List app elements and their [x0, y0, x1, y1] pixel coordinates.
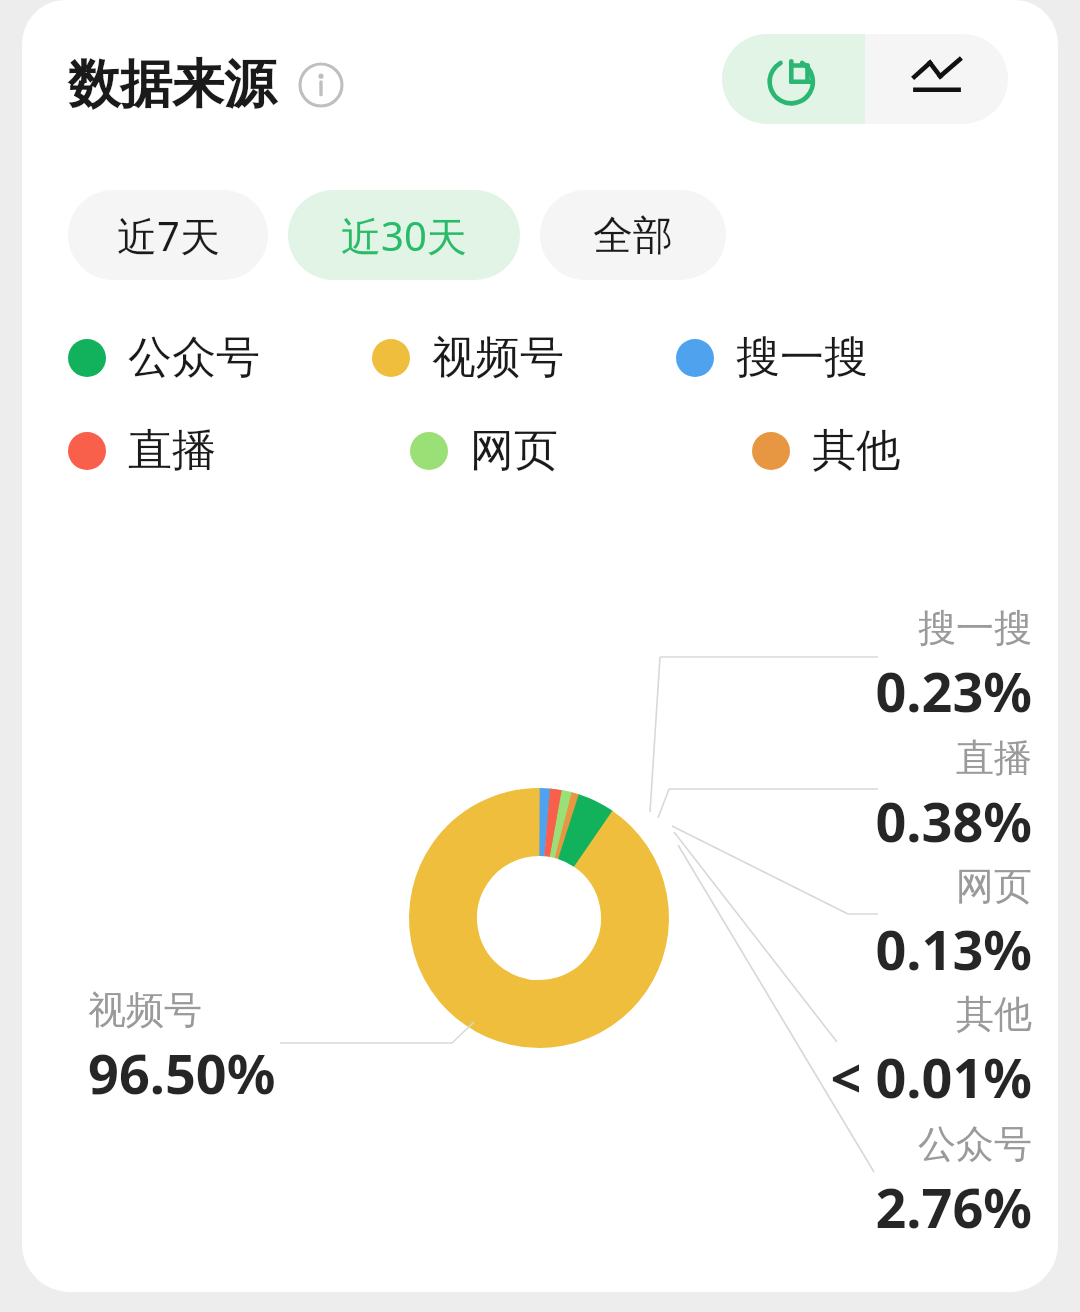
staticText: 2.76% [875, 1170, 1032, 1244]
staticText: < 0.01% [830, 1040, 1032, 1114]
staticText: 其他 [812, 423, 900, 478]
staticText: 搜一搜 [918, 604, 1032, 652]
staticText: 96.50% [88, 1036, 276, 1110]
staticText: 公众号 [128, 330, 260, 385]
button[interactable]: 公众号 [68, 330, 260, 385]
staticText: 视频号 [432, 330, 564, 385]
button[interactable]: 其他 [752, 423, 900, 478]
button[interactable]: 近7天 [68, 190, 268, 280]
button[interactable]: 网页 [410, 423, 558, 478]
button[interactable]: 直播 [68, 423, 216, 478]
button[interactable]: Line chart view [865, 34, 1008, 124]
staticText: 0.13% [875, 912, 1032, 986]
staticText: 公众号 [918, 1120, 1032, 1168]
button[interactable]: 全部 [540, 190, 726, 280]
staticText: 网页 [956, 862, 1032, 910]
staticText: 搜一搜 [736, 330, 868, 385]
staticText: 近7天 [117, 208, 220, 263]
button[interactable]: 近30天 [288, 190, 520, 280]
staticText: 直播 [128, 423, 216, 478]
staticText: 近30天 [341, 208, 467, 263]
staticText: 全部 [593, 210, 673, 260]
button[interactable]: Pie chart view [722, 34, 865, 124]
staticText: 0.38% [875, 784, 1032, 858]
staticText: 0.23% [875, 654, 1032, 728]
staticText: 直播 [956, 734, 1032, 782]
button[interactable]: 视频号 [372, 330, 564, 385]
button[interactable]: Info [298, 62, 344, 108]
staticText: 视频号 [88, 986, 202, 1034]
button[interactable]: 搜一搜 [676, 330, 868, 385]
staticText: 数据来源 [68, 52, 276, 118]
staticText: 网页 [470, 423, 558, 478]
staticText: 其他 [956, 990, 1032, 1038]
